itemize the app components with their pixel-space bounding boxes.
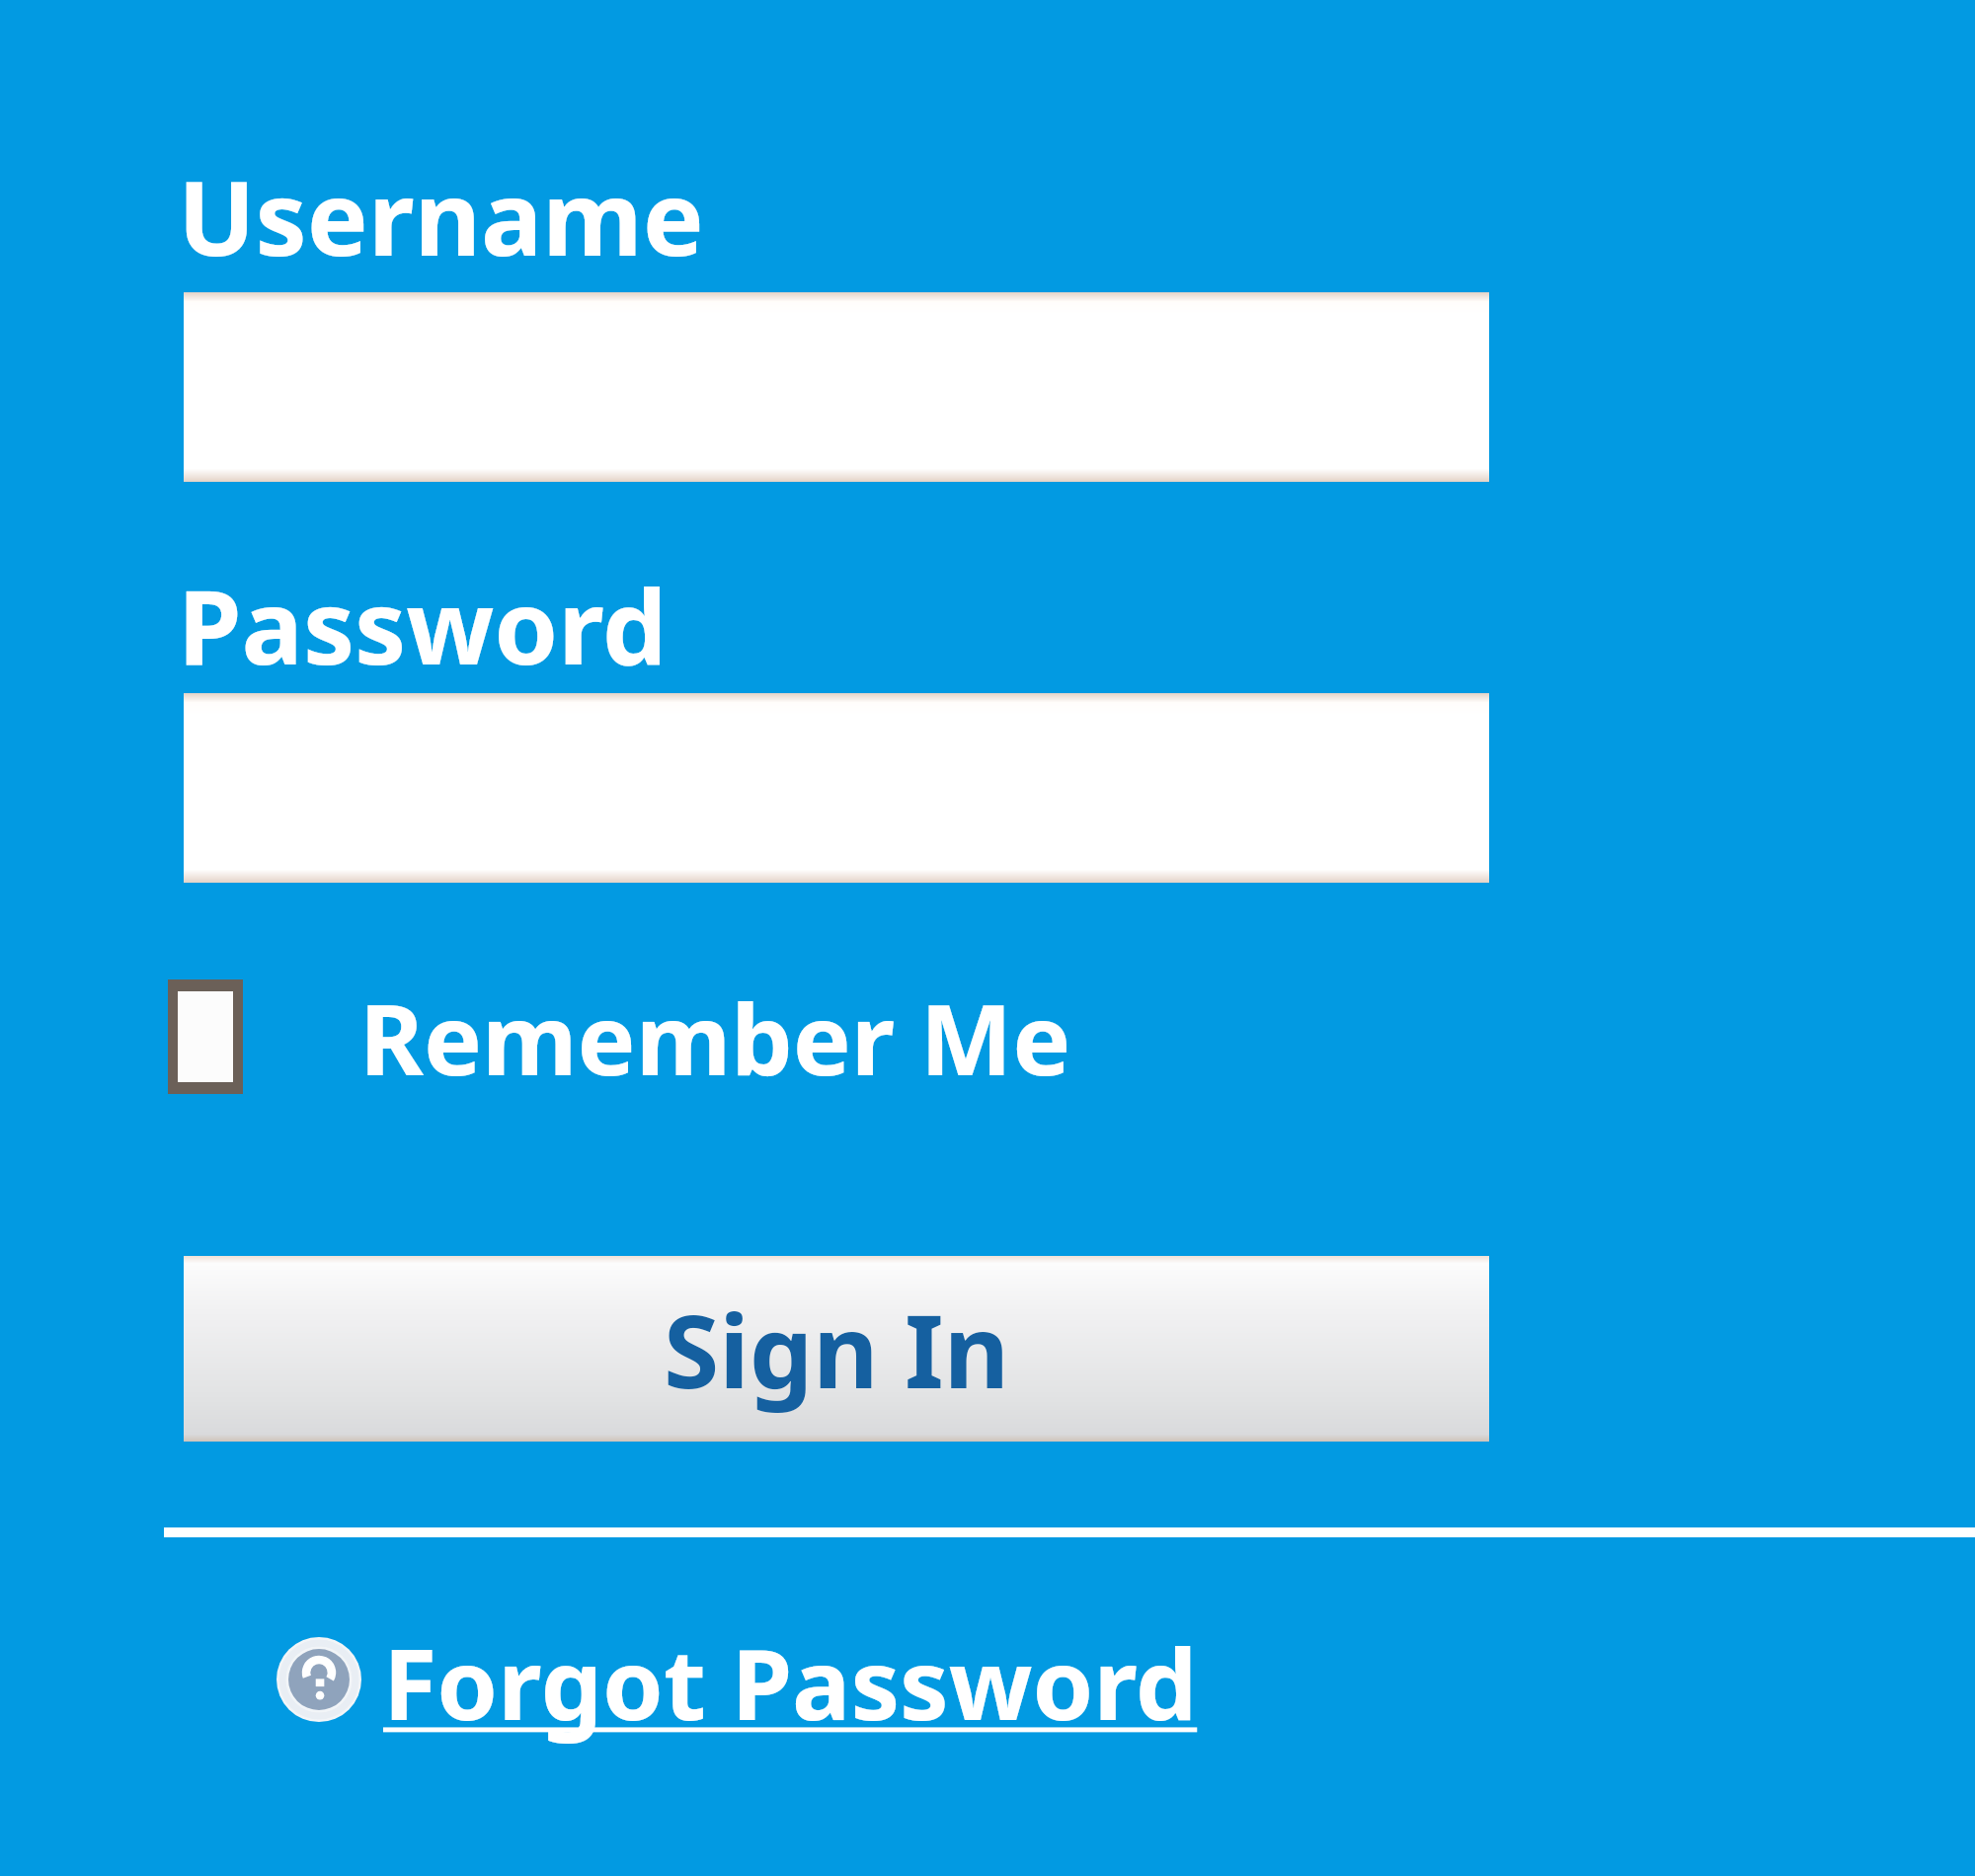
other: Help bbox=[276, 1637, 361, 1722]
button[interactable]: Remember Me bbox=[168, 968, 1071, 1106]
staticText: Username bbox=[178, 146, 704, 286]
staticText: Forgot Password bbox=[383, 1615, 1198, 1744]
staticText: Remember Me bbox=[359, 971, 1071, 1104]
button[interactable]: Sign In bbox=[184, 1256, 1489, 1442]
staticText: Sign In bbox=[664, 1281, 1009, 1418]
button[interactable]: Username input field bbox=[184, 292, 1489, 482]
button[interactable]: Password input field bbox=[184, 693, 1489, 883]
button[interactable]: Help bbox=[276, 1615, 1198, 1744]
staticText: Password bbox=[178, 555, 668, 695]
